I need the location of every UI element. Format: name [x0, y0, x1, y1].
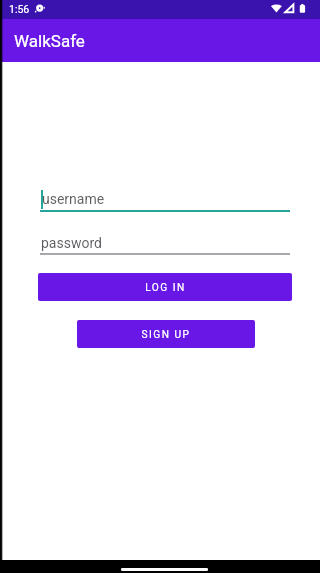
staticText: password: [41, 235, 102, 251]
button[interactable]: SIGN UP: [77, 320, 255, 348]
button[interactable]: password: [40, 235, 290, 255]
staticText: SIGN UP: [141, 329, 191, 341]
staticText: WalkSafe: [14, 31, 85, 51]
staticText: 1:56: [9, 3, 30, 15]
staticText: LOG IN: [145, 282, 186, 294]
staticText: username: [42, 191, 105, 207]
button[interactable]: username: [40, 192, 290, 212]
other: Home: [121, 568, 208, 571]
button[interactable]: LOG IN: [38, 273, 292, 301]
